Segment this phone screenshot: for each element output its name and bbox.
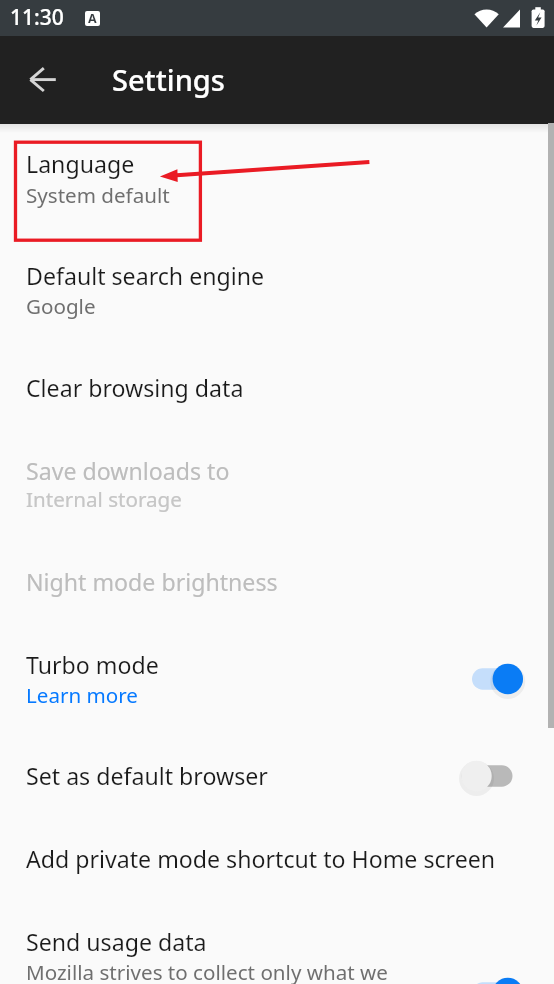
staticText: Add private mode shortcut to Home screen: [26, 843, 496, 875]
staticText: Send usage data: [26, 926, 207, 958]
button[interactable]: Back: [16, 52, 70, 106]
button[interactable]: Send usage data: [0, 901, 554, 984]
staticText: Set as default browser: [26, 760, 268, 792]
staticText: Mozilla strives to collect only what we: [26, 958, 388, 984]
button[interactable]: Save downloads to: [0, 431, 554, 543]
button[interactable]: Language: [0, 125, 554, 237]
staticText: Clear browsing data: [26, 372, 244, 404]
button[interactable]: Set as default browser: [0, 737, 554, 819]
staticText: Save downloads to: [26, 455, 230, 487]
staticText: Turbo mode: [26, 649, 159, 681]
staticText: Learn more: [26, 681, 138, 709]
staticText: Night mode brightness: [26, 566, 278, 598]
staticText: Language: [26, 148, 135, 180]
button[interactable]: Default search engine: [0, 237, 554, 349]
staticText: Google: [26, 292, 96, 320]
staticText: Internal storage: [26, 485, 182, 513]
button[interactable]: Clear browsing data: [0, 349, 554, 431]
button[interactable]: Set as default browser switch: [452, 755, 534, 797]
staticText: System default: [26, 181, 170, 209]
staticText: A: [88, 10, 97, 25]
button[interactable]: Add private mode shortcut to Home screen: [0, 819, 554, 901]
button[interactable]: Night mode brightness: [0, 543, 554, 625]
button[interactable]: Send usage data switch: [452, 972, 534, 984]
button[interactable]: Turbo mode switch: [452, 658, 534, 700]
staticText: 11:30: [10, 3, 64, 32]
staticText: Settings: [112, 60, 225, 99]
button[interactable]: Turbo mode: [0, 625, 554, 737]
staticText: Default search engine: [26, 260, 265, 292]
